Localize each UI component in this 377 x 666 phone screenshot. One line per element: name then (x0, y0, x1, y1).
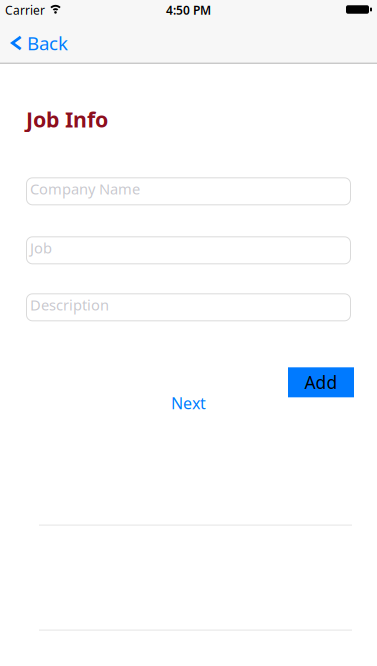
staticText: Back (27, 31, 68, 55)
staticText: Carrier (5, 2, 45, 18)
button[interactable]: Company Name (26, 177, 351, 205)
staticText: Description (30, 295, 109, 315)
button[interactable]: Add (288, 367, 354, 397)
staticText: Next (171, 392, 206, 413)
staticText: 4:50 PM (166, 2, 211, 18)
button[interactable]: Job (26, 236, 351, 264)
button[interactable]: Next (171, 392, 206, 413)
staticText: Add (304, 371, 337, 394)
button[interactable]: Back (0, 27, 68, 55)
button[interactable]: Description (26, 293, 351, 321)
staticText: Job (30, 238, 52, 258)
staticText: Job Info (26, 105, 108, 133)
staticText: Company Name (30, 179, 140, 199)
